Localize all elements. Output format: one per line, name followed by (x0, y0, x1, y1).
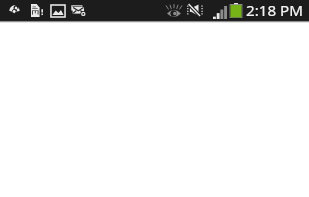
button[interactable]: Wi-Fi, sign-in required (9, 5, 20, 14)
button[interactable]: Mobile signal strength (213, 6, 227, 19)
button[interactable]: New email (71, 4, 86, 17)
button[interactable]: Smart stay on (167, 4, 181, 17)
button[interactable]: 2:18 PM (246, 0, 304, 21)
staticText: 2:18 PM (246, 0, 304, 21)
button[interactable]: SD card (31, 4, 44, 17)
button[interactable]: Sound muted (187, 4, 203, 16)
button[interactable]: Battery full (229, 3, 243, 18)
button[interactable]: Screenshot captured (50, 5, 66, 17)
